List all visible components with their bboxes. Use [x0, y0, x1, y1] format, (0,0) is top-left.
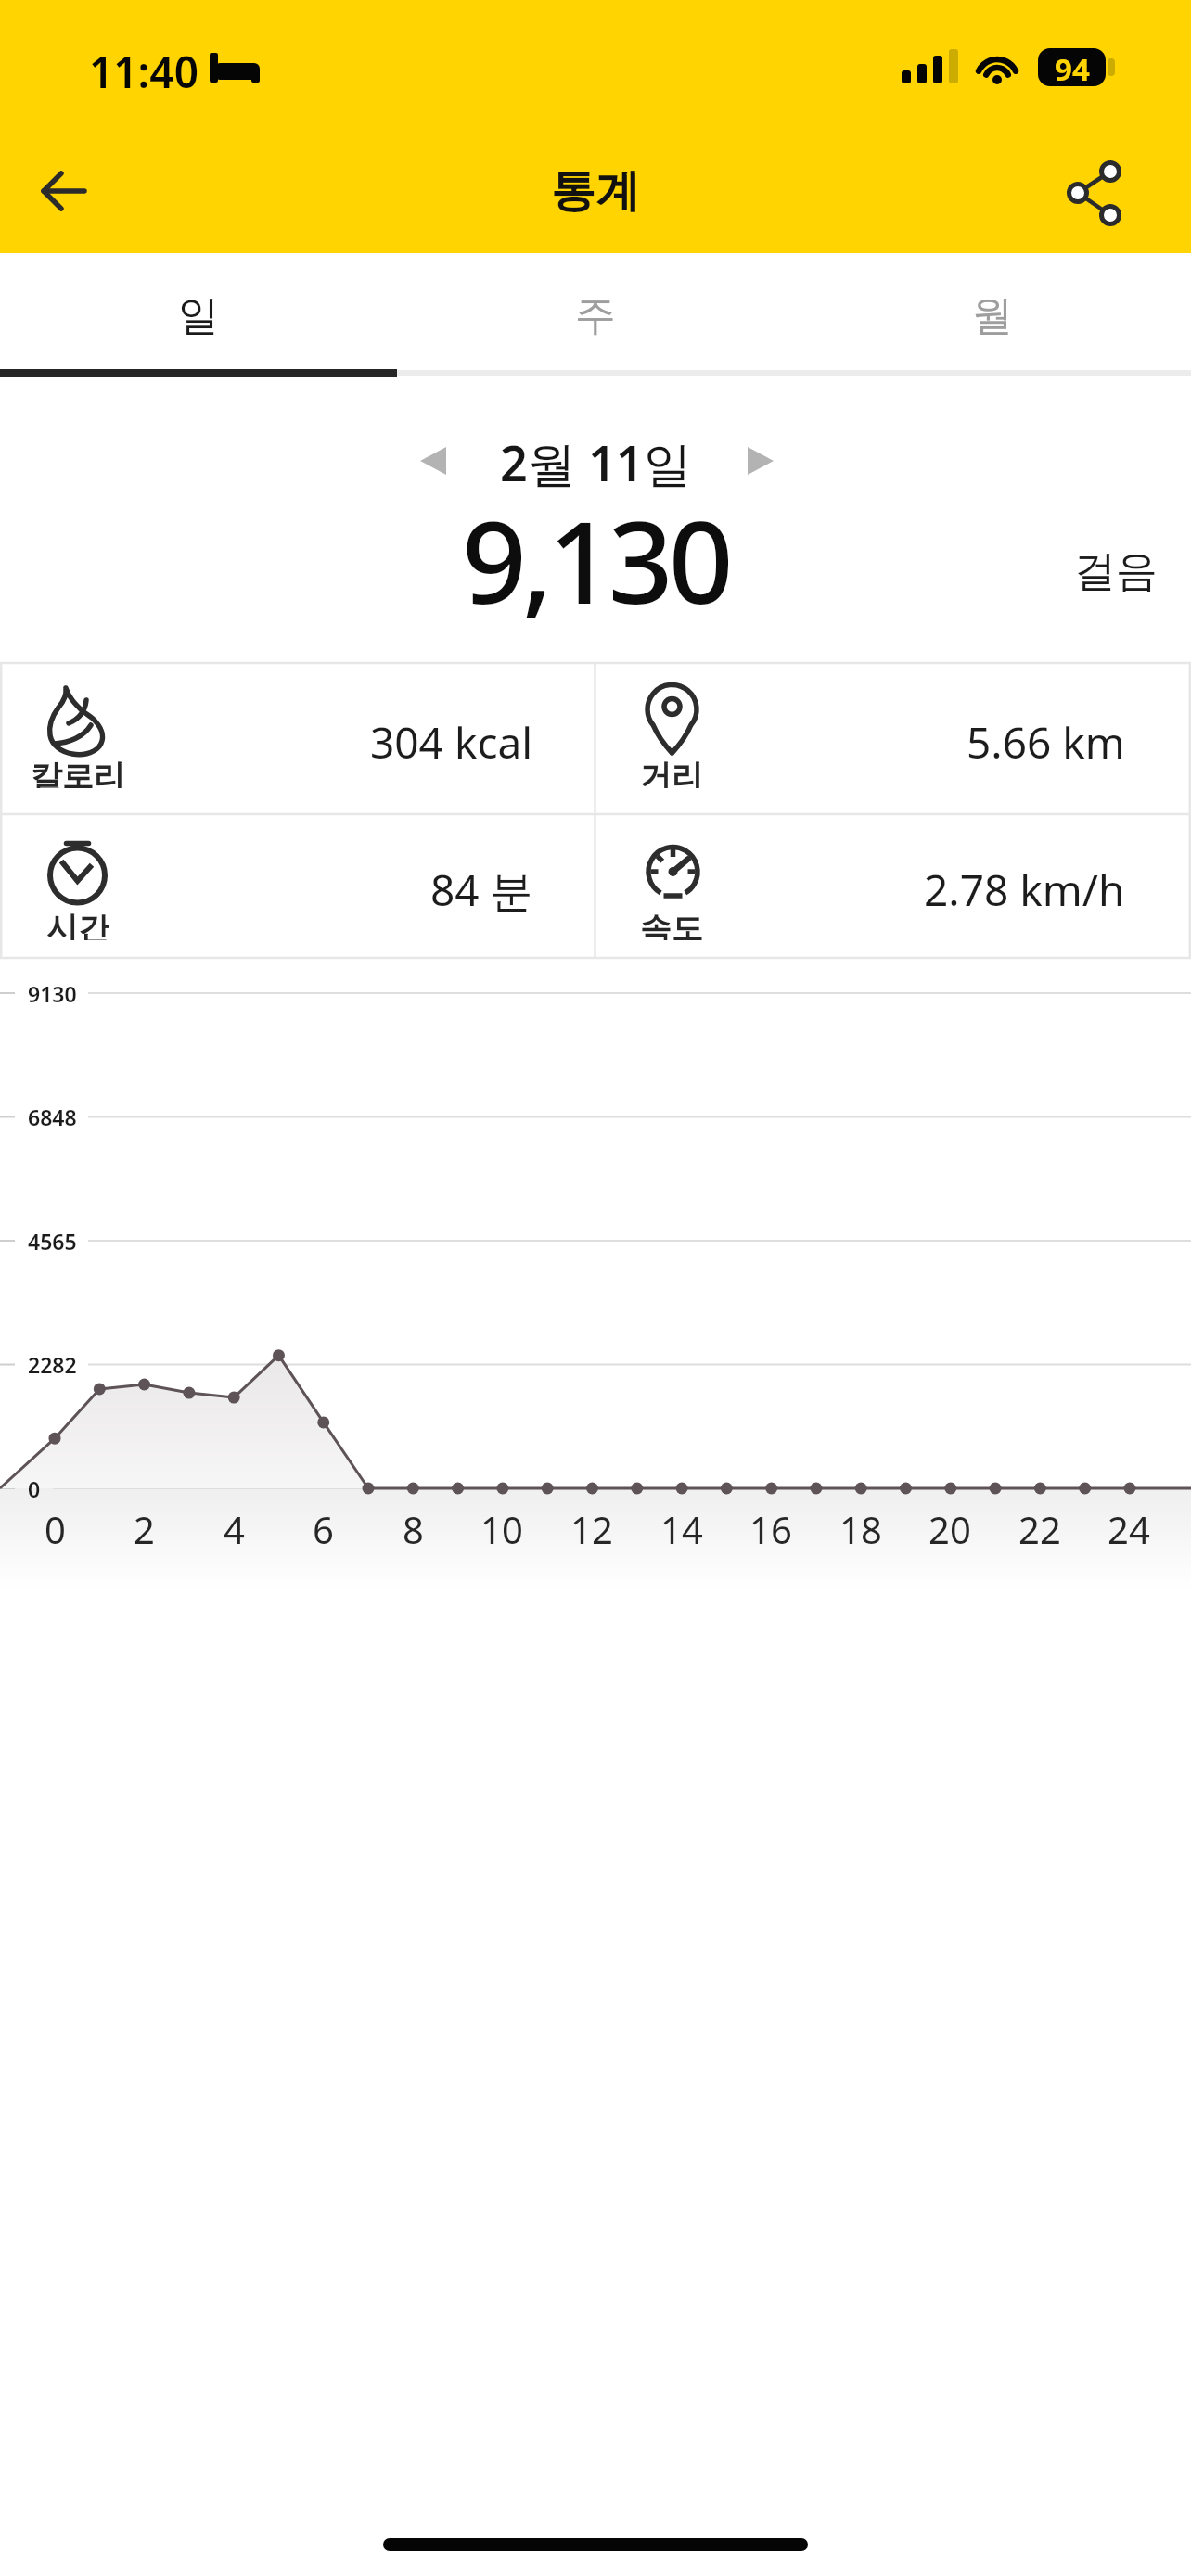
staticText: 속도: [640, 909, 703, 940]
staticText: 16: [749, 1504, 792, 1552]
staticText: 94: [1055, 48, 1090, 86]
staticText: 일: [178, 290, 219, 341]
staticText: 거리: [640, 757, 703, 788]
staticText: 10: [480, 1504, 523, 1552]
staticText: 304 kcal: [370, 713, 533, 765]
staticText: 걸음: [1074, 545, 1158, 592]
staticText: 20: [928, 1504, 971, 1552]
button[interactable]: 주: [397, 253, 794, 377]
staticText: 22: [1018, 1504, 1061, 1552]
button[interactable]: [394, 428, 473, 495]
staticText: 12: [570, 1504, 613, 1552]
staticText: 시간: [46, 909, 109, 940]
staticText: 2월 11일: [500, 429, 692, 495]
button[interactable]: [1048, 148, 1141, 234]
staticText: 칼로리: [31, 757, 125, 788]
staticText: 84 분: [430, 861, 533, 912]
staticText: 0: [45, 1504, 66, 1552]
staticText: 2282: [28, 1350, 77, 1379]
staticText: 24: [1108, 1504, 1150, 1552]
button[interactable]: 일: [0, 253, 397, 377]
staticText: 4565: [28, 1227, 77, 1256]
staticText: 6: [313, 1504, 334, 1552]
staticText: 9,130: [462, 483, 729, 624]
staticText: 11:40: [89, 43, 198, 91]
staticText: 2: [134, 1504, 155, 1552]
staticText: 통계: [551, 163, 640, 215]
staticText: 2.78 km/h: [924, 861, 1125, 912]
button[interactable]: [22, 148, 111, 234]
staticText: 8: [403, 1504, 424, 1552]
staticText: 월: [972, 290, 1013, 341]
staticText: 4: [224, 1504, 245, 1552]
staticText: 5.66 km: [967, 713, 1125, 765]
button[interactable]: [719, 428, 798, 495]
staticText: 주: [575, 290, 616, 341]
staticText: 6848: [28, 1103, 77, 1131]
staticText: 14: [660, 1504, 703, 1552]
staticText: 9130: [28, 979, 77, 1008]
button[interactable]: 월: [794, 253, 1191, 377]
staticText: 0: [28, 1474, 41, 1503]
staticText: 18: [839, 1504, 882, 1552]
